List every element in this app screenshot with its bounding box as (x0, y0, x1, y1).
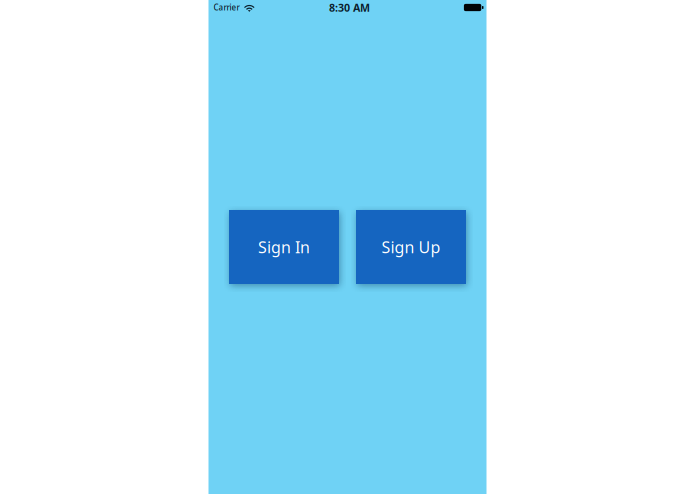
button[interactable]: Sign In (229, 210, 339, 284)
staticText: 8:30 AM (329, 0, 370, 15)
staticText: Sign In (258, 236, 310, 258)
staticText: Sign Up (381, 236, 440, 258)
button[interactable]: Sign Up (356, 210, 466, 284)
staticText: Carrier (213, 2, 239, 13)
